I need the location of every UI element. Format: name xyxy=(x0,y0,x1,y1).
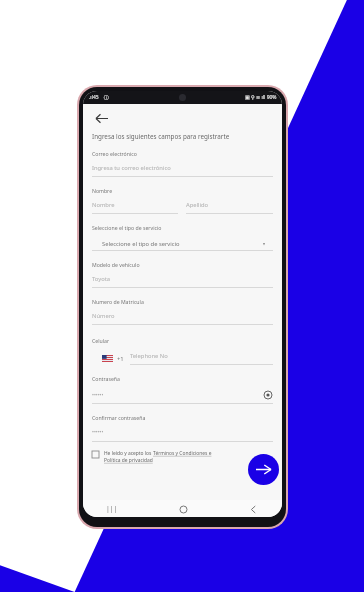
staticText: .ıl45 ⓘ xyxy=(89,94,109,101)
staticText: Número xyxy=(92,312,115,320)
staticText: Apellido xyxy=(186,201,209,209)
button[interactable]: Home xyxy=(176,502,190,516)
staticText: Ingresa los siguientes campos para regis… xyxy=(92,132,230,141)
staticText: Ingresa tu correo electrónico xyxy=(92,164,171,172)
staticText: ||| xyxy=(106,504,118,514)
button[interactable]: Recents xyxy=(105,502,119,516)
staticText: Toyota xyxy=(92,275,111,283)
staticText: Telephone No xyxy=(130,352,168,360)
button[interactable]: He leído y acepto los xyxy=(92,450,273,464)
button[interactable]: Back xyxy=(92,109,110,127)
staticText: Nombre xyxy=(92,187,113,194)
staticText: Términos y Condiciones e xyxy=(153,450,212,457)
staticText: Seleccione el tipo de servicio xyxy=(102,240,180,248)
staticText: Nombre xyxy=(92,201,115,209)
button[interactable]: Show password xyxy=(263,390,273,400)
staticText: Política de privacidad xyxy=(104,457,153,464)
staticText: Seleccione el tipo de servicio xyxy=(92,224,162,231)
staticText: •••••• xyxy=(92,429,104,436)
staticText: Contraseña xyxy=(92,375,120,382)
staticText: He leído y acepto los xyxy=(104,450,153,457)
button[interactable]: Continuar xyxy=(248,454,279,485)
staticText: ▣ ⚲ ≋ ıll 90% xyxy=(245,94,277,101)
staticText: Celular xyxy=(92,337,110,344)
staticText: Numero de Matricula xyxy=(92,298,144,305)
staticText: Correo electrónico xyxy=(92,150,137,157)
staticText: Confirmar contraseña xyxy=(92,414,146,421)
staticText: Modelo de vehículo xyxy=(92,261,140,268)
staticText: •••••• xyxy=(92,392,104,399)
button[interactable]: Back xyxy=(246,502,260,516)
staticText: +1 xyxy=(117,355,124,363)
button[interactable]: Seleccione el tipo de servicio xyxy=(92,237,273,250)
